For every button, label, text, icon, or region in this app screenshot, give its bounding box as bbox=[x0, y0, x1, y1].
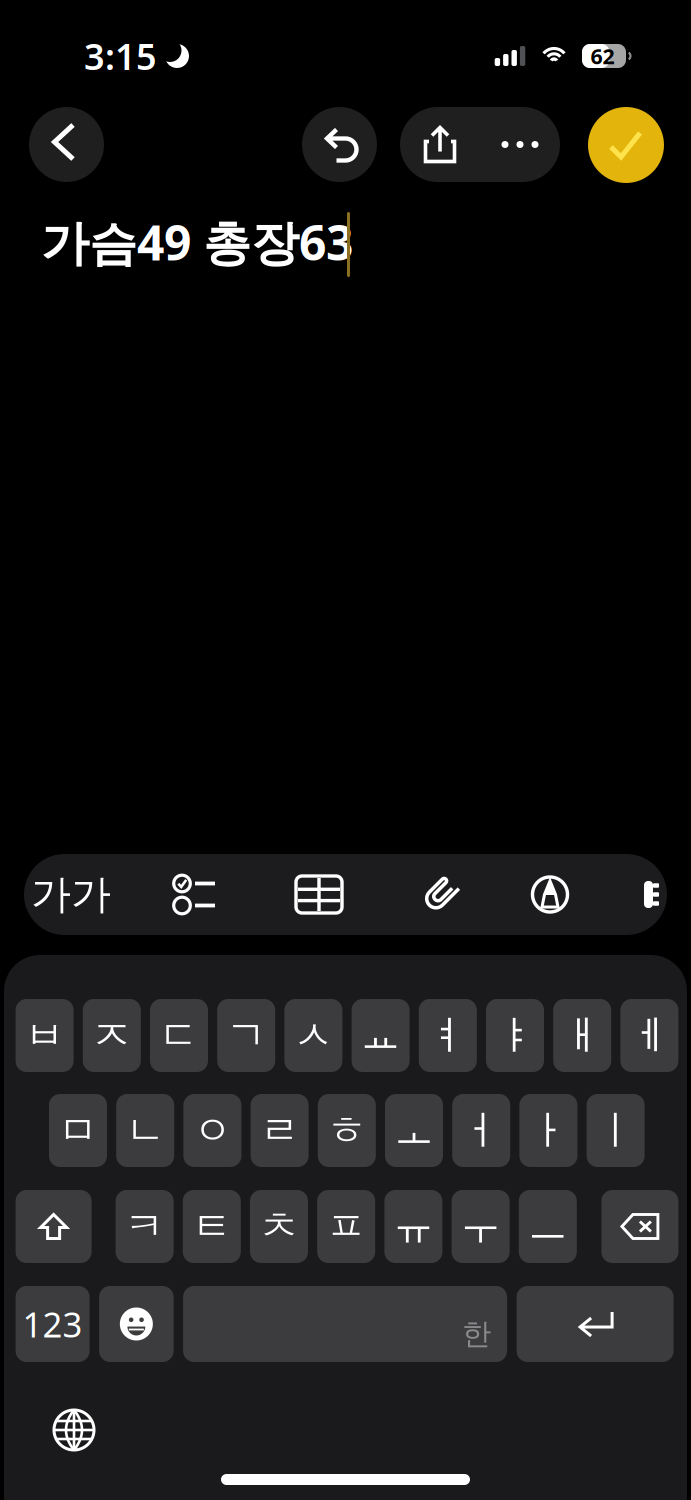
staticText: ㅔ bbox=[629, 1011, 669, 1060]
staticText: 한 bbox=[462, 1316, 491, 1352]
button[interactable]: Table bbox=[264, 854, 374, 935]
button[interactable]: Share bbox=[400, 107, 480, 182]
staticText: ㄴ bbox=[125, 1106, 165, 1155]
staticText: ㅓ bbox=[461, 1106, 501, 1155]
staticText: ㄷ bbox=[159, 1011, 199, 1060]
staticText: 123 bbox=[23, 1301, 83, 1347]
staticText: ㅁ bbox=[58, 1106, 98, 1155]
button[interactable]: ㅎ bbox=[318, 1094, 376, 1167]
staticText: ㅛ bbox=[361, 1011, 401, 1060]
button[interactable]: ㅍ bbox=[317, 1190, 375, 1263]
button[interactable]: Delete bbox=[601, 1190, 678, 1263]
staticText: ㄹ bbox=[260, 1106, 300, 1155]
button[interactable]: Emoji bbox=[99, 1286, 174, 1362]
staticText: ㅐ bbox=[562, 1011, 602, 1060]
button[interactable]: ㄷ bbox=[150, 999, 208, 1072]
staticText: 가가 bbox=[31, 870, 111, 919]
button[interactable]: ㅜ bbox=[452, 1190, 510, 1263]
button[interactable]: Back bbox=[29, 107, 104, 182]
staticText: 62 bbox=[590, 42, 614, 70]
staticText: ㅡ bbox=[528, 1202, 568, 1251]
button[interactable]: ㄹ bbox=[251, 1094, 309, 1167]
staticText: ㅇ bbox=[192, 1106, 232, 1155]
button[interactable]: ㅊ bbox=[250, 1190, 308, 1263]
button[interactable]: ㅂ bbox=[16, 999, 74, 1072]
staticText: ㅣ bbox=[596, 1106, 636, 1155]
staticText: ㅌ bbox=[192, 1202, 232, 1251]
button[interactable]: Undo bbox=[302, 107, 377, 182]
staticText: ㅂ bbox=[25, 1011, 65, 1060]
button[interactable]: Done bbox=[588, 107, 664, 183]
button[interactable]: Next keyboard bbox=[44, 1400, 104, 1460]
button[interactable]: ㅡ bbox=[519, 1190, 577, 1263]
button[interactable]: Markup bbox=[495, 854, 605, 935]
button[interactable]: ㅌ bbox=[183, 1190, 241, 1263]
button[interactable]: ㅛ bbox=[352, 999, 410, 1072]
button[interactable]: Attach bbox=[385, 854, 495, 935]
staticText: ㅑ bbox=[495, 1011, 535, 1060]
button[interactable]: Shift bbox=[16, 1190, 92, 1263]
button[interactable]: ㅠ bbox=[384, 1190, 442, 1263]
button[interactable]: ㅈ bbox=[83, 999, 141, 1072]
staticText: ㅠ bbox=[393, 1202, 433, 1251]
staticText: ㅍ bbox=[326, 1202, 366, 1251]
staticText: ㅏ bbox=[528, 1106, 568, 1155]
button[interactable]: ㅕ bbox=[419, 999, 477, 1072]
staticText: ㄱ bbox=[226, 1011, 266, 1060]
staticText: ㅗ bbox=[394, 1106, 434, 1155]
button[interactable]: ㅁ bbox=[49, 1094, 107, 1167]
button[interactable]: ㅇ bbox=[183, 1094, 241, 1167]
staticText: ㅈ bbox=[92, 1011, 132, 1060]
button[interactable]: 가가 bbox=[21, 854, 121, 935]
staticText: ㅊ bbox=[259, 1202, 299, 1251]
button[interactable]: More bbox=[480, 107, 560, 182]
button[interactable]: ㅓ bbox=[452, 1094, 510, 1167]
button[interactable]: 123 bbox=[16, 1286, 90, 1362]
button[interactable]: ㄴ bbox=[116, 1094, 174, 1167]
button[interactable]: ㅅ bbox=[284, 999, 342, 1072]
button[interactable]: Scan bbox=[644, 854, 666, 935]
staticText: ㅅ bbox=[293, 1011, 333, 1060]
button[interactable]: 한 bbox=[183, 1286, 507, 1362]
staticText: ㅕ bbox=[428, 1011, 468, 1060]
button[interactable]: ㅐ bbox=[553, 999, 611, 1072]
button[interactable]: ㅣ bbox=[587, 1094, 645, 1167]
staticText: ㅎ bbox=[327, 1106, 367, 1155]
button[interactable]: ㅔ bbox=[620, 999, 678, 1072]
staticText: ㅜ bbox=[461, 1202, 501, 1251]
staticText: 3:15 bbox=[84, 32, 157, 80]
button[interactable]: ㅑ bbox=[486, 999, 544, 1072]
button[interactable]: ㄱ bbox=[217, 999, 275, 1072]
staticText: 가슴49 총장63 bbox=[41, 210, 353, 274]
staticText: ㅋ bbox=[125, 1202, 165, 1251]
button[interactable]: ㅏ bbox=[519, 1094, 577, 1167]
button[interactable]: ㅋ bbox=[116, 1190, 174, 1263]
button[interactable]: ㅗ bbox=[385, 1094, 443, 1167]
button[interactable]: Checklist bbox=[139, 854, 249, 935]
button[interactable]: Return bbox=[517, 1286, 674, 1362]
